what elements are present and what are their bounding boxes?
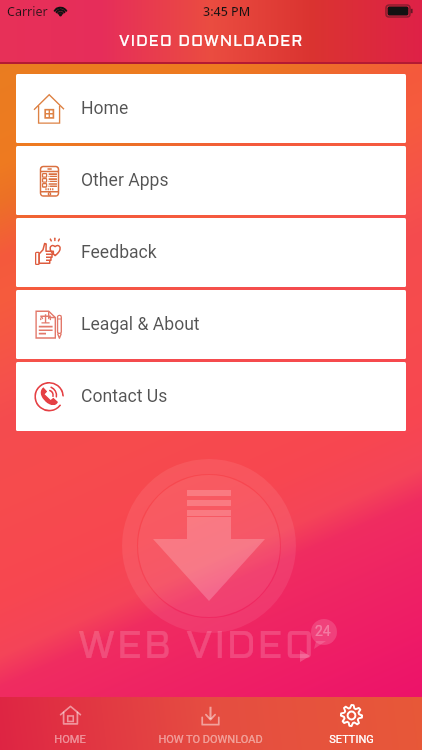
staticText: Leagal & About bbox=[81, 314, 200, 335]
staticText: Other Apps bbox=[81, 170, 169, 191]
staticText: SETTING bbox=[329, 733, 374, 746]
staticText: HOW TO DOWNLOAD bbox=[158, 733, 263, 746]
staticText: 24 bbox=[315, 623, 331, 639]
staticText: Home bbox=[81, 98, 129, 119]
button[interactable]: Other Apps bbox=[16, 146, 406, 215]
staticText: WEB VIDEO bbox=[78, 631, 316, 666]
staticText: Carrier bbox=[7, 3, 48, 20]
button[interactable]: Leagal & About bbox=[16, 290, 406, 359]
button[interactable]: SETTING bbox=[281, 697, 422, 750]
button[interactable]: HOME bbox=[0, 697, 140, 750]
staticText: Feedback bbox=[81, 242, 157, 263]
staticText: Contact Us bbox=[81, 386, 168, 407]
button[interactable]: Home bbox=[16, 74, 406, 143]
staticText: HOME bbox=[54, 733, 86, 746]
staticText: 3:45 PM bbox=[203, 3, 251, 20]
staticText: VIDEO DOWNLOADER bbox=[119, 35, 304, 49]
button[interactable]: Feedback bbox=[16, 218, 406, 287]
button[interactable]: Contact Us bbox=[16, 362, 406, 431]
button[interactable]: HOW TO DOWNLOAD bbox=[140, 697, 281, 750]
